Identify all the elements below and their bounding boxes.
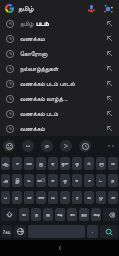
staticText: ய bbox=[63, 195, 67, 200]
staticText: ஐ bbox=[39, 161, 43, 166]
button[interactable]: ஏ bbox=[48, 157, 58, 170]
staticText: ஈ bbox=[16, 161, 19, 166]
staticText: வ bbox=[87, 195, 91, 200]
button[interactable]: . bbox=[87, 225, 98, 238]
button[interactable]: ஈ bbox=[12, 157, 22, 170]
staticText: ஒ bbox=[63, 178, 67, 183]
button[interactable]: ஔ bbox=[60, 157, 70, 170]
button[interactable]: வணக்கம் bbox=[0, 121, 119, 136]
button[interactable]: ஃ bbox=[84, 157, 94, 170]
button[interactable]: ஞ bbox=[96, 157, 106, 170]
button[interactable]: இ bbox=[12, 174, 22, 187]
button[interactable]: வணக்கம bbox=[0, 31, 119, 46]
button[interactable]: ஹ bbox=[79, 208, 89, 221]
button[interactable] bbox=[0, 0, 18, 16]
staticText: ம bbox=[51, 195, 55, 200]
button[interactable]: ழ bbox=[96, 191, 106, 204]
button[interactable]: ை bbox=[36, 174, 46, 187]
staticText: ங bbox=[111, 161, 115, 166]
staticText: ஔ bbox=[61, 161, 69, 166]
button[interactable]: வணக்கம் படம் பாடல் bbox=[0, 76, 119, 91]
staticText: ப bbox=[4, 195, 7, 200]
staticText: ழ bbox=[99, 195, 103, 200]
staticText: ப bbox=[26, 143, 30, 149]
button[interactable]: ப bbox=[1, 191, 10, 204]
button[interactable]: Backspace bbox=[103, 208, 118, 221]
button[interactable]: Stickers bbox=[41, 140, 53, 152]
staticText: ண bbox=[38, 195, 45, 200]
button[interactable]: ஆ bbox=[1, 157, 10, 170]
staticText: க்ஷ bbox=[93, 212, 100, 217]
button[interactable]: ச bbox=[84, 174, 94, 187]
staticText: வணக்கம் படம் bbox=[20, 110, 59, 118]
button[interactable]: அ bbox=[1, 174, 10, 187]
button[interactable]: வணக்கம் படம் bbox=[0, 106, 119, 121]
staticText: க bbox=[75, 178, 79, 183]
button[interactable]: ன bbox=[24, 191, 34, 204]
button[interactable]: Back bbox=[53, 241, 67, 255]
button[interactable]: Symbols bbox=[1, 225, 12, 238]
button[interactable]: ண bbox=[36, 191, 46, 204]
button[interactable]: வ bbox=[84, 191, 94, 204]
button[interactable]: ஓ bbox=[72, 157, 82, 170]
button[interactable]: Search with Google Lens bbox=[100, 0, 116, 16]
button[interactable]: ஐ bbox=[36, 157, 46, 170]
staticText: ஊ bbox=[26, 161, 32, 166]
button[interactable]: க்ஷ bbox=[91, 208, 101, 221]
button[interactable]: கொரோனா bbox=[0, 46, 119, 61]
button[interactable]: ம bbox=[48, 191, 58, 204]
staticText: தமிழ் bbox=[20, 20, 36, 28]
button[interactable]: த bbox=[108, 174, 118, 187]
button[interactable]: ய bbox=[60, 191, 70, 204]
button[interactable]: ல bbox=[19, 208, 29, 221]
button[interactable]: வணக்கம் வாழ்த் bbox=[0, 91, 119, 106]
button[interactable]: உ bbox=[24, 174, 34, 187]
button[interactable]: ர bbox=[72, 191, 82, 204]
staticText: நல்வாழ்த்துகள் bbox=[20, 66, 59, 72]
button[interactable]: ட bbox=[96, 174, 106, 187]
button[interactable]: Emoji bbox=[3, 140, 15, 152]
staticText: உ bbox=[27, 178, 32, 183]
staticText: அ bbox=[3, 178, 8, 183]
staticText: ள bbox=[111, 195, 116, 200]
staticText: ர bbox=[76, 195, 79, 200]
button[interactable]: ஊ bbox=[24, 157, 34, 170]
button[interactable]: தமிழ் bbox=[0, 16, 119, 31]
button[interactable]: ங bbox=[108, 157, 118, 170]
button[interactable]: ள bbox=[108, 191, 118, 204]
button[interactable]: நல்வாழ்த்துகள் bbox=[0, 61, 119, 76]
button[interactable]: More options bbox=[105, 140, 116, 151]
staticText: ஏ bbox=[51, 161, 55, 166]
staticText: ஷ bbox=[57, 212, 63, 217]
staticText: ஜ bbox=[46, 212, 50, 217]
staticText: வணக்கம bbox=[20, 36, 45, 42]
button[interactable]: Change language bbox=[14, 225, 26, 238]
button[interactable]: எ bbox=[48, 174, 58, 187]
button[interactable]: Voice search bbox=[83, 0, 99, 16]
button[interactable]: Clipboard bbox=[79, 140, 91, 152]
button[interactable]: ற bbox=[12, 191, 22, 204]
button[interactable]: Translate bbox=[60, 140, 72, 152]
staticText: ச bbox=[88, 178, 91, 183]
button[interactable]: ஒ bbox=[60, 174, 70, 187]
staticText: ஹ bbox=[81, 212, 87, 217]
staticText: ட bbox=[99, 178, 103, 183]
staticText: தமிழ் bbox=[18, 5, 34, 12]
button[interactable]: Shift bbox=[1, 208, 17, 221]
staticText: படம் bbox=[36, 21, 49, 28]
button[interactable]: க bbox=[72, 174, 82, 187]
button[interactable]: ஷ bbox=[55, 208, 65, 221]
staticText: வணக்கம் படம் பாடல் bbox=[20, 80, 75, 88]
staticText: வணக்கம் bbox=[20, 126, 45, 132]
button[interactable]: GIF bbox=[22, 140, 34, 152]
staticText: ஞ bbox=[99, 161, 104, 166]
staticText: ஸ bbox=[70, 212, 75, 217]
button[interactable]: ந bbox=[31, 208, 41, 221]
button[interactable]: Search bbox=[100, 225, 118, 238]
staticText: ஃ bbox=[87, 161, 91, 166]
button[interactable]: ஸ bbox=[67, 208, 77, 221]
staticText: இ bbox=[15, 178, 20, 183]
staticText: ன bbox=[27, 195, 32, 200]
button[interactable]: ஜ bbox=[43, 208, 53, 221]
